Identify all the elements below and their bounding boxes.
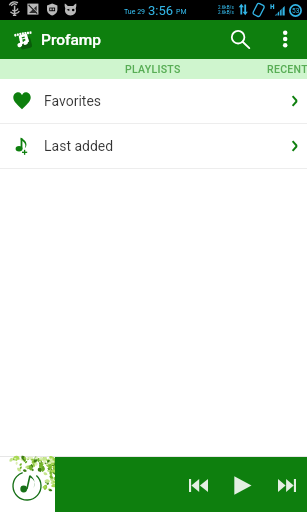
button[interactable]: Play — [225, 467, 261, 503]
staticText: Last added — [44, 138, 114, 154]
button[interactable]: Next track — [269, 467, 305, 503]
staticText: Profamp — [41, 31, 102, 49]
staticText: PM — [176, 8, 187, 16]
button[interactable]: More options — [268, 20, 302, 59]
staticText: 3:56 — [148, 3, 174, 18]
staticText: Tue 29 — [124, 8, 146, 16]
staticText: Favorites — [44, 93, 102, 109]
button[interactable]: Favorites — [0, 79, 307, 123]
staticText: 53 — [292, 7, 300, 15]
button[interactable]: Last added — [0, 124, 307, 168]
button[interactable]: PLAYLISTS — [97, 59, 209, 79]
button[interactable] — [0, 457, 55, 512]
staticText: RECENT — [267, 63, 307, 75]
staticText: 2.6kB/s — [218, 5, 234, 10]
staticText: PLAYLISTS — [125, 63, 181, 75]
button[interactable]: Search — [221, 20, 259, 59]
button[interactable]: RECENT — [240, 59, 307, 79]
button[interactable]: Previous track — [180, 467, 216, 503]
staticText: 2.6kB/s — [218, 10, 234, 15]
